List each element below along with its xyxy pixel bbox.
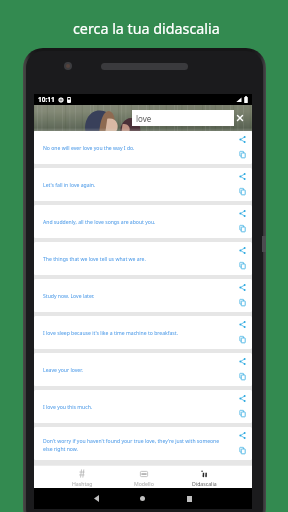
button[interactable]: Home: [119, 488, 166, 509]
button[interactable]: Copy: [238, 335, 247, 344]
button[interactable]: Don't worry if you haven't found your tr…: [34, 427, 252, 460]
button[interactable]: Study now. Love later.: [34, 279, 252, 312]
button[interactable]: Hashtag: [51, 465, 113, 488]
staticText: 10:11: [38, 95, 55, 104]
button[interactable]: Modello: [113, 465, 174, 488]
staticText: I love sleep because it's like a time ma…: [43, 330, 178, 337]
button[interactable]: Clear search: [235, 113, 245, 123]
button[interactable]: Copy: [238, 150, 247, 159]
button[interactable]: Copy: [238, 261, 247, 270]
button[interactable]: Share: [238, 172, 247, 181]
button[interactable]: Share: [238, 246, 247, 255]
staticText: cerca la tua didascalia: [73, 19, 220, 38]
button[interactable]: And suddenly, all the love songs are abo…: [34, 205, 252, 238]
button[interactable]: Copy: [238, 224, 247, 233]
button[interactable]: Share: [238, 320, 247, 329]
staticText: Study now. Love later.: [43, 293, 95, 300]
button[interactable]: Copy: [238, 372, 247, 381]
staticText: No one will ever love you the way I do.: [43, 145, 135, 152]
button[interactable]: Copy: [238, 298, 247, 307]
button[interactable]: Recents: [166, 488, 213, 509]
staticText: love: [136, 113, 152, 124]
button[interactable]: I love you this much.: [34, 390, 252, 423]
button[interactable]: The things that we love tell us what we …: [34, 242, 252, 275]
button[interactable]: Share: [238, 283, 247, 292]
button[interactable]: Share: [238, 135, 247, 144]
button[interactable]: No one will ever love you the way I do.: [34, 131, 252, 164]
button[interactable]: Share: [238, 357, 247, 366]
button[interactable]: I love sleep because it's like a time ma…: [34, 316, 252, 349]
staticText: Hashtag: [72, 480, 93, 487]
button[interactable]: love: [132, 110, 234, 126]
button[interactable]: Leave your lover.: [34, 353, 252, 386]
button[interactable]: Share: [238, 394, 247, 403]
staticText: Modello: [134, 480, 154, 487]
staticText: Leave your lover.: [43, 367, 83, 374]
button[interactable]: Copy: [238, 187, 247, 196]
staticText: I love you this much.: [43, 404, 93, 411]
staticText: Didascalia: [192, 480, 217, 487]
staticText: Let's fall in love again.: [43, 182, 96, 189]
staticText: The things that we love tell us what we …: [43, 256, 146, 263]
button[interactable]: Back: [73, 488, 119, 509]
button[interactable]: Copy: [238, 446, 247, 455]
staticText: Don't worry if you haven't found your tr…: [43, 438, 226, 452]
button[interactable]: Let's fall in love again.: [34, 168, 252, 201]
button[interactable]: Share: [238, 431, 247, 440]
button[interactable]: Share: [238, 209, 247, 218]
staticText: And suddenly, all the love songs are abo…: [43, 219, 156, 226]
button[interactable]: Didascalia: [174, 465, 235, 488]
button[interactable]: Copy: [238, 409, 247, 418]
